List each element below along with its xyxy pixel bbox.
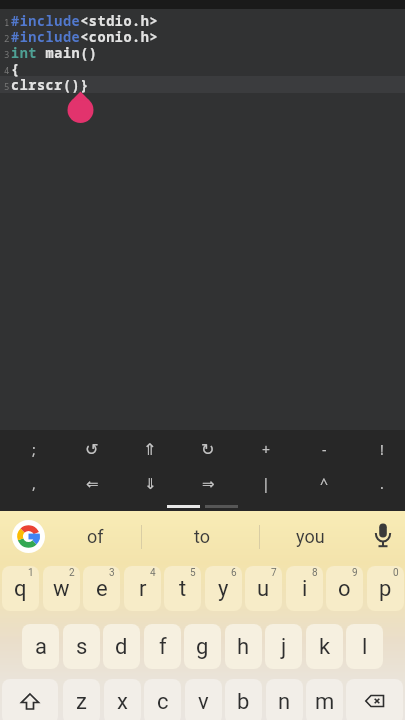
staticText: e [96, 576, 108, 602]
button[interactable]: v [185, 679, 222, 720]
staticText: 2 [4, 32, 10, 44]
button[interactable]: ^ [304, 466, 344, 500]
staticText: o [338, 576, 351, 602]
staticText: p [379, 576, 392, 602]
staticText: i [302, 576, 308, 602]
staticText: a [35, 634, 47, 660]
button[interactable]: . [362, 466, 402, 500]
button[interactable]: + [246, 432, 286, 466]
button[interactable]: r [124, 566, 161, 611]
staticText: 5 [4, 80, 10, 92]
button[interactable]: ! [362, 432, 402, 466]
staticText: , [32, 474, 36, 493]
button[interactable]: | [246, 466, 286, 500]
staticText: n [278, 689, 291, 715]
staticText: 6 [231, 567, 237, 579]
button[interactable] [2, 679, 58, 720]
staticText: 0 [393, 567, 399, 579]
staticText: clrscr()} [11, 76, 89, 94]
staticText: of [87, 526, 104, 547]
button[interactable]: you [263, 511, 357, 562]
button[interactable]: o [326, 566, 363, 611]
staticText: j [281, 634, 287, 660]
staticText: t [179, 576, 187, 602]
staticText: 1 [28, 567, 34, 579]
button[interactable]: g [184, 624, 221, 669]
staticText: 4 [4, 64, 10, 76]
staticText: c [157, 689, 169, 715]
button[interactable]: t [164, 566, 201, 611]
staticText: y [218, 576, 229, 602]
button[interactable]: h [225, 624, 262, 669]
button[interactable]: b [225, 679, 262, 720]
staticText: 3 [109, 567, 115, 579]
staticText: + [262, 440, 271, 459]
button[interactable]: m [306, 679, 343, 720]
button[interactable]: j [265, 624, 302, 669]
button[interactable]: ↻ [188, 432, 228, 466]
staticText: s [76, 634, 88, 660]
button[interactable]: z [63, 679, 100, 720]
staticText: ⇑ [143, 440, 157, 459]
staticText: 5 [190, 567, 196, 579]
staticText: #include<stdio.h> [11, 12, 159, 30]
staticText: d [115, 634, 128, 660]
button[interactable]: ↺ [72, 432, 112, 466]
staticText: g [196, 634, 209, 660]
staticText: 1 [4, 16, 10, 28]
button[interactable]: , [14, 466, 54, 500]
button[interactable]: s [63, 624, 100, 669]
staticText: - [322, 440, 327, 459]
button[interactable] [346, 679, 403, 720]
staticText: w [53, 576, 70, 602]
button[interactable]: ⇓ [130, 466, 170, 500]
staticText: k [319, 634, 331, 660]
staticText: 9 [352, 567, 358, 579]
button[interactable]: ⇒ [188, 466, 228, 500]
button[interactable]: to [146, 511, 258, 562]
staticText: h [237, 634, 250, 660]
staticText: ^ [320, 474, 329, 493]
staticText: 4 [150, 567, 156, 579]
button[interactable]: of [57, 511, 133, 562]
button[interactable]: d [103, 624, 140, 669]
button[interactable]: e [83, 566, 120, 611]
button[interactable]: i [286, 566, 323, 611]
button[interactable]: x [104, 679, 141, 720]
staticText: ↺ [85, 440, 99, 459]
button[interactable]: n [266, 679, 303, 720]
button[interactable]: q [2, 566, 39, 611]
staticText: . [380, 474, 384, 493]
button[interactable]: p [367, 566, 404, 611]
staticText: | [262, 474, 270, 493]
staticText: q [14, 576, 27, 602]
staticText: ; [32, 440, 36, 459]
button[interactable]: - [304, 432, 344, 466]
staticText: 3 [4, 48, 10, 60]
staticText: l [362, 634, 368, 660]
staticText: f [159, 634, 167, 660]
button[interactable] [369, 522, 397, 550]
button[interactable] [12, 520, 45, 553]
staticText: int main() [11, 44, 98, 62]
staticText: #include<conio.h> [11, 28, 159, 46]
button[interactable]: l [346, 624, 383, 669]
staticText: ↻ [201, 440, 215, 459]
button[interactable]: f [144, 624, 181, 669]
staticText: 7 [271, 567, 277, 579]
button[interactable]: w [43, 566, 80, 611]
staticText: z [76, 689, 87, 715]
button[interactable]: a [22, 624, 59, 669]
button[interactable]: ; [14, 432, 54, 466]
button[interactable]: ⇑ [130, 432, 170, 466]
button[interactable]: u [245, 566, 282, 611]
button[interactable]: ⇐ [72, 466, 112, 500]
staticText: u [257, 576, 270, 602]
staticText: { [11, 60, 20, 78]
button[interactable]: k [306, 624, 343, 669]
button[interactable]: c [144, 679, 181, 720]
staticText: v [198, 689, 209, 715]
button[interactable]: y [205, 566, 242, 611]
staticText: you [296, 526, 325, 547]
staticText: ⇓ [144, 475, 157, 492]
